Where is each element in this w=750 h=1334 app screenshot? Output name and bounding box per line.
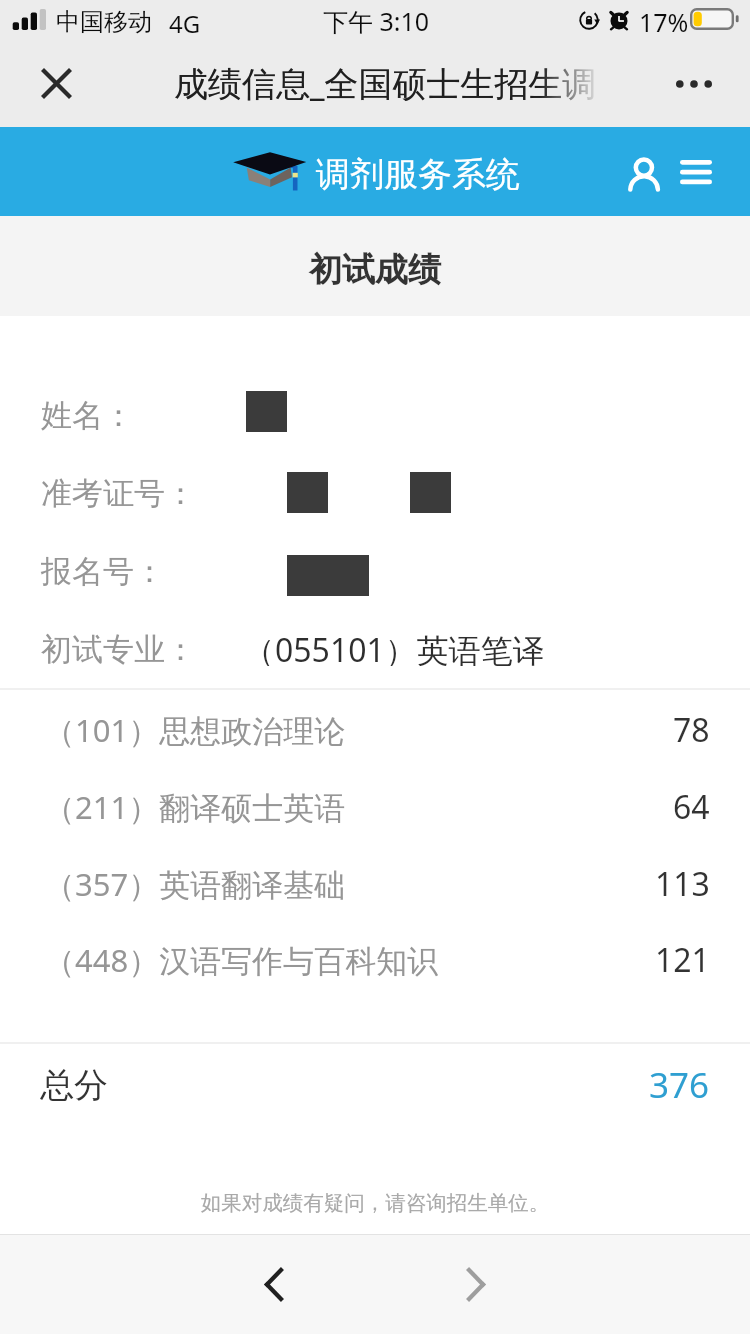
button[interactable]: Back xyxy=(244,1254,304,1314)
button[interactable]: （101）思想政治理论 xyxy=(0,691,750,768)
staticText: 78 xyxy=(673,708,710,752)
staticText: （101）思想政治理论 xyxy=(44,709,346,751)
button[interactable]: 总分 xyxy=(0,1044,750,1126)
staticText: （055101）英语笔译 xyxy=(243,628,545,666)
staticText: 成绩信息_全国硕士生招生调剂服务系统 xyxy=(174,60,602,104)
button[interactable]: Close xyxy=(28,55,85,112)
staticText: 准考证号： xyxy=(41,474,196,513)
staticText: （448）汉语写作与百科知识 xyxy=(44,939,439,981)
staticText: 初试成绩 xyxy=(309,249,441,291)
staticText: 姓名： xyxy=(41,396,134,435)
staticText: 121 xyxy=(655,938,710,982)
button[interactable]: More options xyxy=(666,56,722,112)
staticText: 下午 3:10 xyxy=(323,4,430,38)
button[interactable]: （211）翻译硕士英语 xyxy=(0,768,750,845)
staticText: 64 xyxy=(673,785,710,829)
staticText: 376 xyxy=(649,1061,710,1109)
staticText: （211）翻译硕士英语 xyxy=(44,786,346,828)
staticText: 17% xyxy=(639,5,689,39)
staticText: 113 xyxy=(655,862,710,906)
staticText: 如果对成绩有疑问，请咨询招生单位。 xyxy=(0,1190,750,1216)
staticText: 初试专业： xyxy=(41,630,196,669)
button[interactable]: Account xyxy=(618,133,670,185)
staticText: 4G xyxy=(169,7,201,40)
button[interactable]: （357）英语翻译基础 xyxy=(0,845,750,922)
staticText: （357）英语翻译基础 xyxy=(44,863,346,905)
button[interactable]: （448）汉语写作与百科知识 xyxy=(0,921,750,998)
staticText: 中国移动 xyxy=(56,7,152,37)
button[interactable]: Forward xyxy=(446,1254,506,1314)
staticText: 总分 xyxy=(40,1064,108,1107)
button[interactable]: Menu xyxy=(670,146,722,198)
staticText: 报名号： xyxy=(41,552,165,591)
staticText: 调剂服务系统 xyxy=(316,153,520,196)
